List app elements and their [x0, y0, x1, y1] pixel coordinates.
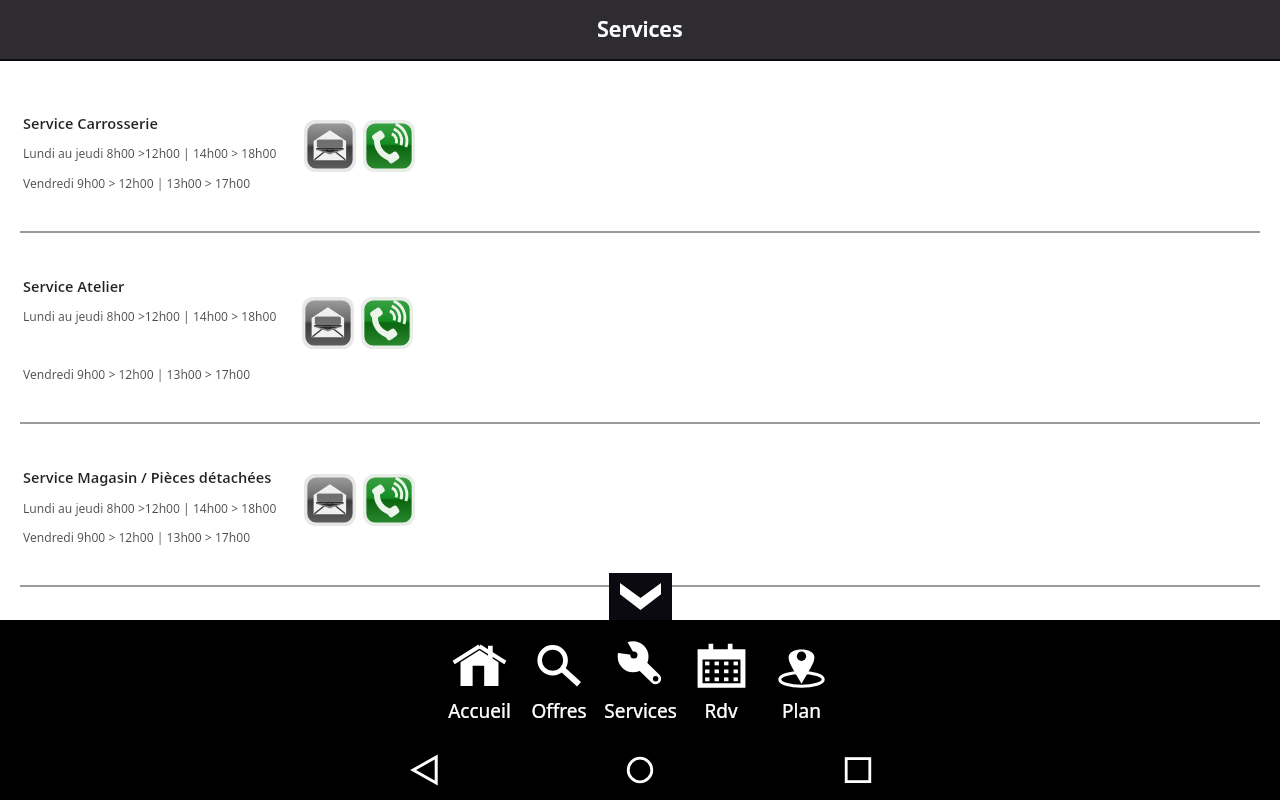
staticText: Services	[597, 14, 683, 43]
staticText: Service Atelier	[23, 276, 125, 296]
button[interactable]: Back	[405, 750, 445, 790]
button[interactable]: Rdv	[681, 641, 761, 724]
staticText: Plan	[782, 698, 821, 724]
staticText: Lundi au jeudi 8h00 >12h00 | 14h00 > 18h…	[23, 500, 277, 516]
button[interactable]: Recents	[838, 750, 878, 790]
button[interactable]: Call	[363, 120, 415, 172]
button[interactable]: Email	[302, 297, 354, 349]
staticText: Accueil	[448, 698, 511, 724]
button[interactable]: Call	[363, 474, 415, 526]
button[interactable]: Offres	[519, 641, 599, 724]
button[interactable]: Call	[361, 297, 413, 349]
staticText: Rdv	[704, 698, 738, 724]
staticText: Service Magasin / Pièces détachées	[23, 467, 272, 487]
button[interactable]	[0, 424, 1280, 585]
button[interactable]: Home	[620, 750, 660, 790]
staticText: Offres	[531, 698, 587, 724]
staticText: Services	[604, 698, 677, 724]
staticText: Lundi au jeudi 8h00 >12h00 | 14h00 > 18h…	[23, 308, 277, 324]
staticText: Service Carrosserie	[23, 113, 158, 133]
staticText: Vendredi 9h00 > 12h00 | 13h00 > 17h00	[23, 175, 251, 191]
button[interactable]: Scroll down	[609, 573, 672, 620]
staticText: Lundi au jeudi 8h00 >12h00 | 14h00 > 18h…	[23, 145, 277, 161]
button[interactable]: Accueil	[439, 641, 519, 724]
button[interactable]: Email	[304, 474, 356, 526]
button[interactable]: Plan	[761, 641, 841, 724]
button[interactable]	[0, 233, 1280, 422]
button[interactable]	[0, 62, 1280, 231]
button[interactable]: Email	[304, 120, 356, 172]
staticText: Vendredi 9h00 > 12h00 | 13h00 > 17h00	[23, 529, 251, 545]
staticText: Vendredi 9h00 > 12h00 | 13h00 > 17h00	[23, 366, 251, 382]
button[interactable]: Services	[599, 641, 681, 724]
